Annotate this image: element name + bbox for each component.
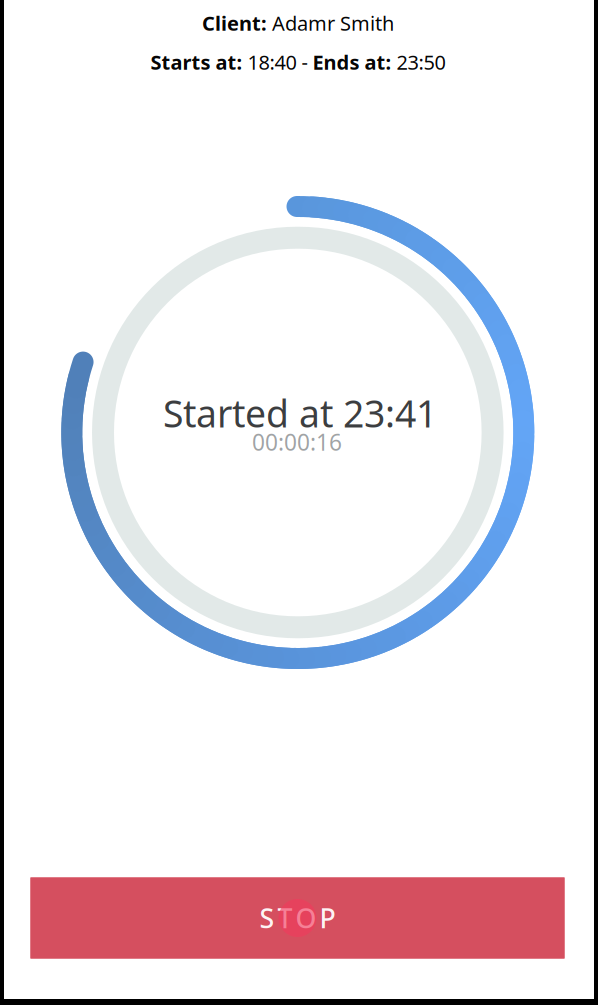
staticText: Client: Adamr Smith bbox=[202, 10, 394, 36]
staticText: O bbox=[295, 900, 316, 936]
button[interactable]: S bbox=[30, 877, 564, 958]
staticText: Starts at: 18:40 - Ends at: 23:50 bbox=[150, 49, 445, 75]
staticText: T bbox=[277, 900, 292, 936]
staticText: S bbox=[259, 900, 274, 936]
staticText: 00:00:16 bbox=[252, 427, 342, 457]
staticText: Started at 23:41 bbox=[163, 388, 437, 438]
staticText: P bbox=[319, 900, 335, 936]
